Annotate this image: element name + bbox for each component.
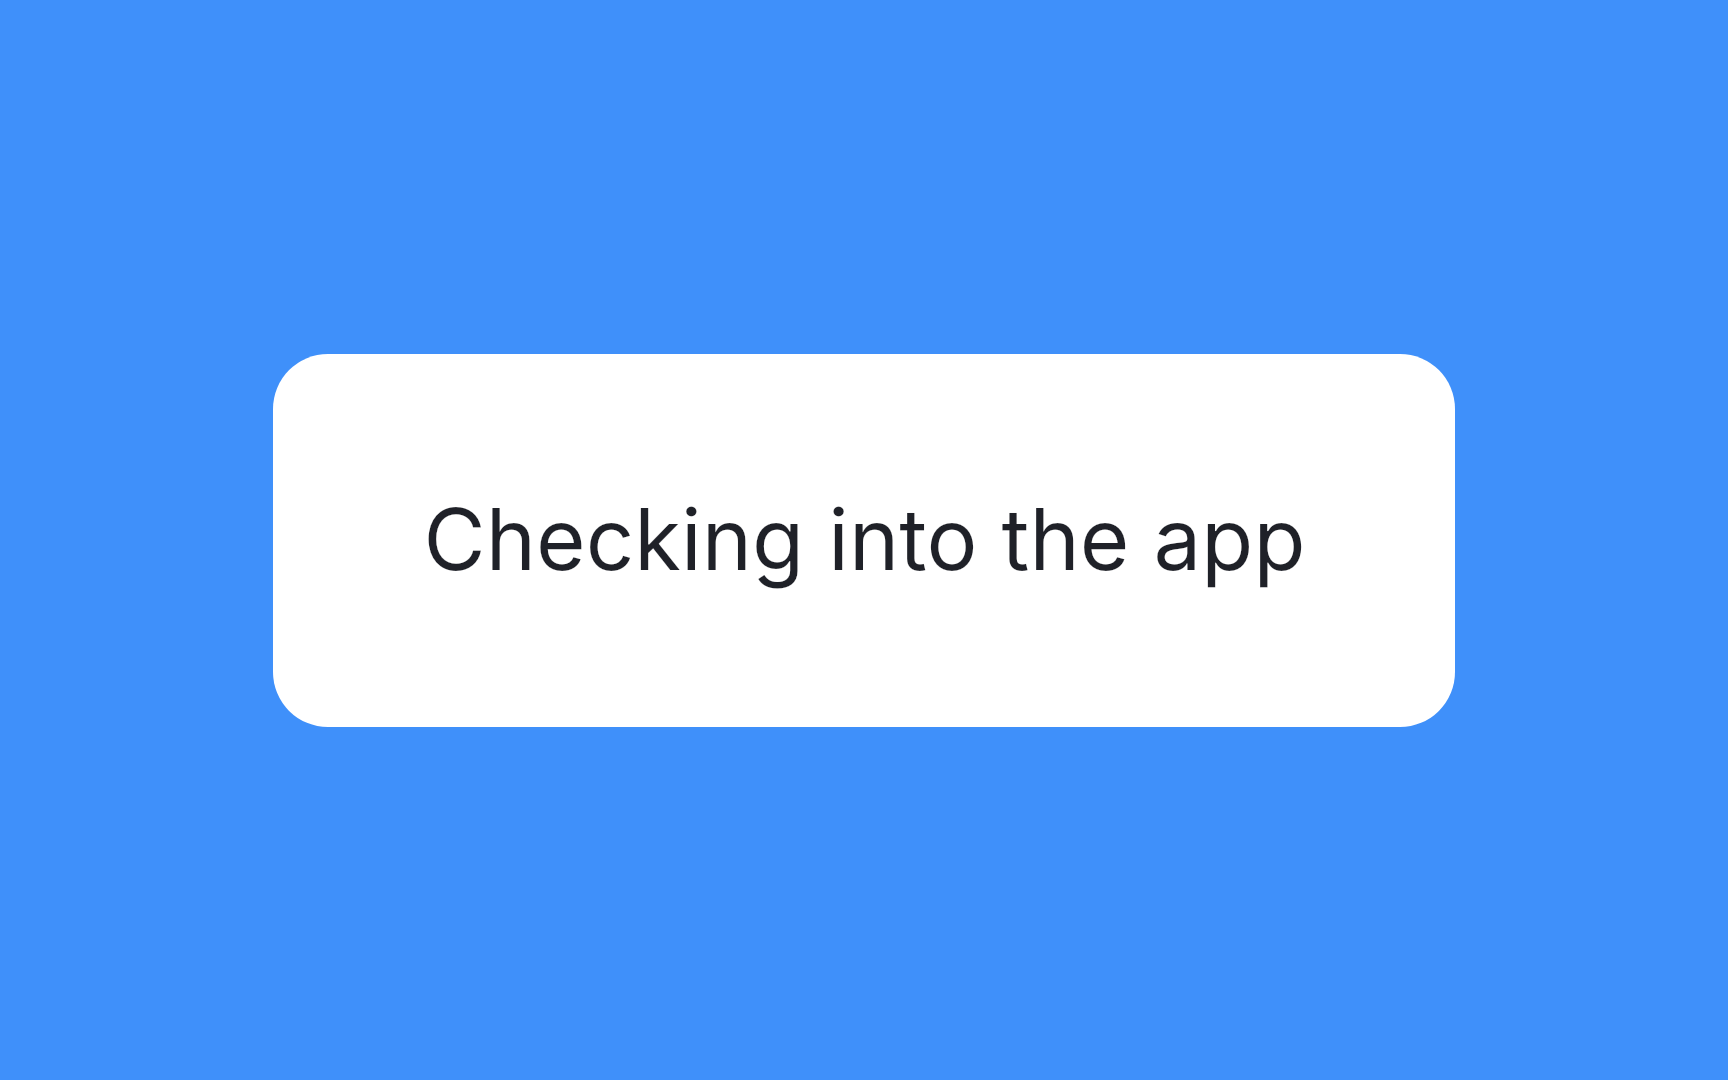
button[interactable]: Checking into the app: [273, 354, 1455, 727]
staticText: Checking into the app: [423, 488, 1306, 591]
